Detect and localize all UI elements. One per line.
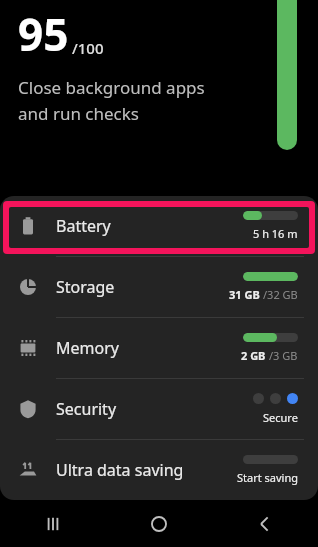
button[interactable]: Battery	[0, 196, 318, 256]
staticText: Storage	[56, 276, 115, 298]
staticText: 31 GB	[229, 287, 263, 302]
staticText: 95	[18, 4, 69, 64]
staticText: Security	[56, 398, 117, 420]
button[interactable]: Back	[212, 500, 318, 547]
staticText: Battery	[56, 215, 111, 237]
button[interactable]: Security	[0, 379, 318, 439]
button[interactable]: Storage	[0, 257, 318, 317]
staticText: Start saving	[237, 470, 298, 485]
staticText: Close background apps	[18, 76, 205, 99]
button[interactable]: Memory	[0, 318, 318, 378]
staticText: /32 GB	[263, 287, 298, 302]
button[interactable]: Ultra data saving	[0, 440, 318, 500]
staticText: Ultra data saving	[56, 459, 184, 481]
staticText: and run checks	[18, 102, 140, 125]
staticText: 2 GB	[241, 348, 269, 363]
staticText: Memory	[56, 337, 119, 359]
staticText: 5 h 16 m	[253, 226, 298, 241]
staticText: /100	[72, 38, 104, 58]
button[interactable]: Recent apps	[0, 500, 106, 547]
button[interactable]: Home	[106, 500, 212, 547]
staticText: Secure	[263, 410, 298, 425]
staticText: /3 GB	[269, 348, 298, 363]
